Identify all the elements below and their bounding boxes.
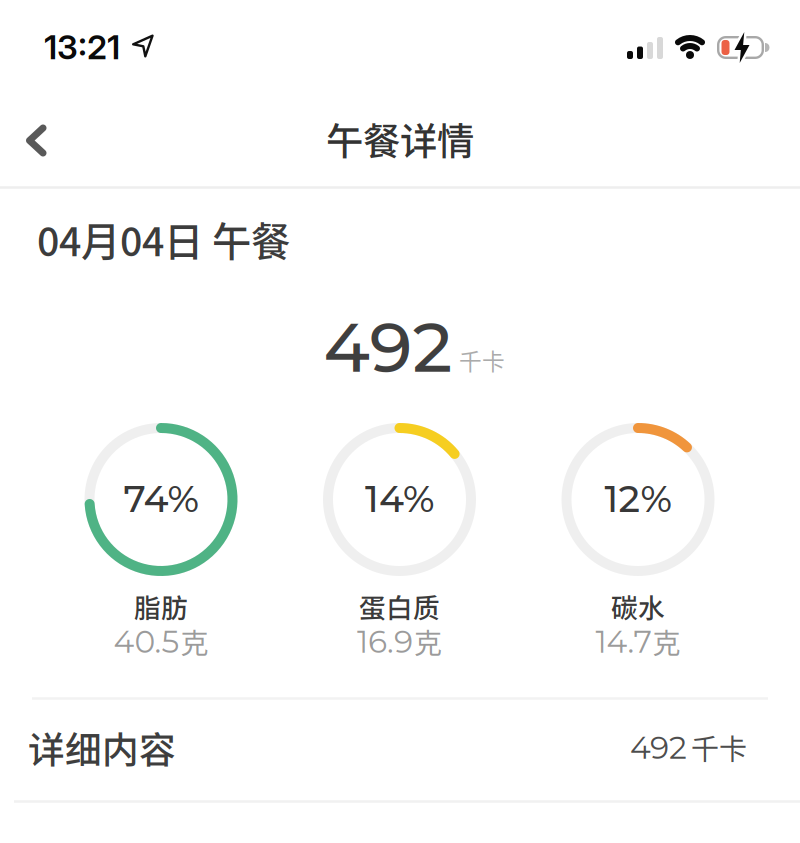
staticText: 14% [365,476,434,521]
staticText: 碳水 [611,587,665,625]
staticText: 74% [123,476,198,521]
button[interactable]: Back [0,91,71,189]
staticText: 午餐详情 [326,112,474,166]
staticText: 脂肪 [134,587,188,625]
staticText: 克 [652,621,680,662]
staticText: 04月04日 午餐 [37,210,290,267]
staticText: 蛋白质 [359,587,440,625]
staticText: 492 [630,728,687,767]
staticText: 详细内容 [28,721,176,774]
staticText: 克 [180,621,208,662]
staticText: 14.7 [595,622,651,661]
staticText: 492 [323,305,452,389]
staticText: 16.9 [357,622,413,661]
staticText: 13:21 [44,27,120,67]
staticText: 40.5 [113,622,179,661]
staticText: 12% [604,476,671,521]
staticText: 克 [414,621,442,662]
staticText: 千卡 [459,344,505,376]
staticText: 千卡 [691,727,747,768]
